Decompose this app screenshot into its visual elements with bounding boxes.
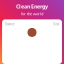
staticText: for the world	[21, 11, 43, 16]
staticText: Balance	[5, 22, 15, 26]
staticText: Clean Energy	[16, 3, 48, 10]
staticText: Total	[53, 22, 59, 26]
